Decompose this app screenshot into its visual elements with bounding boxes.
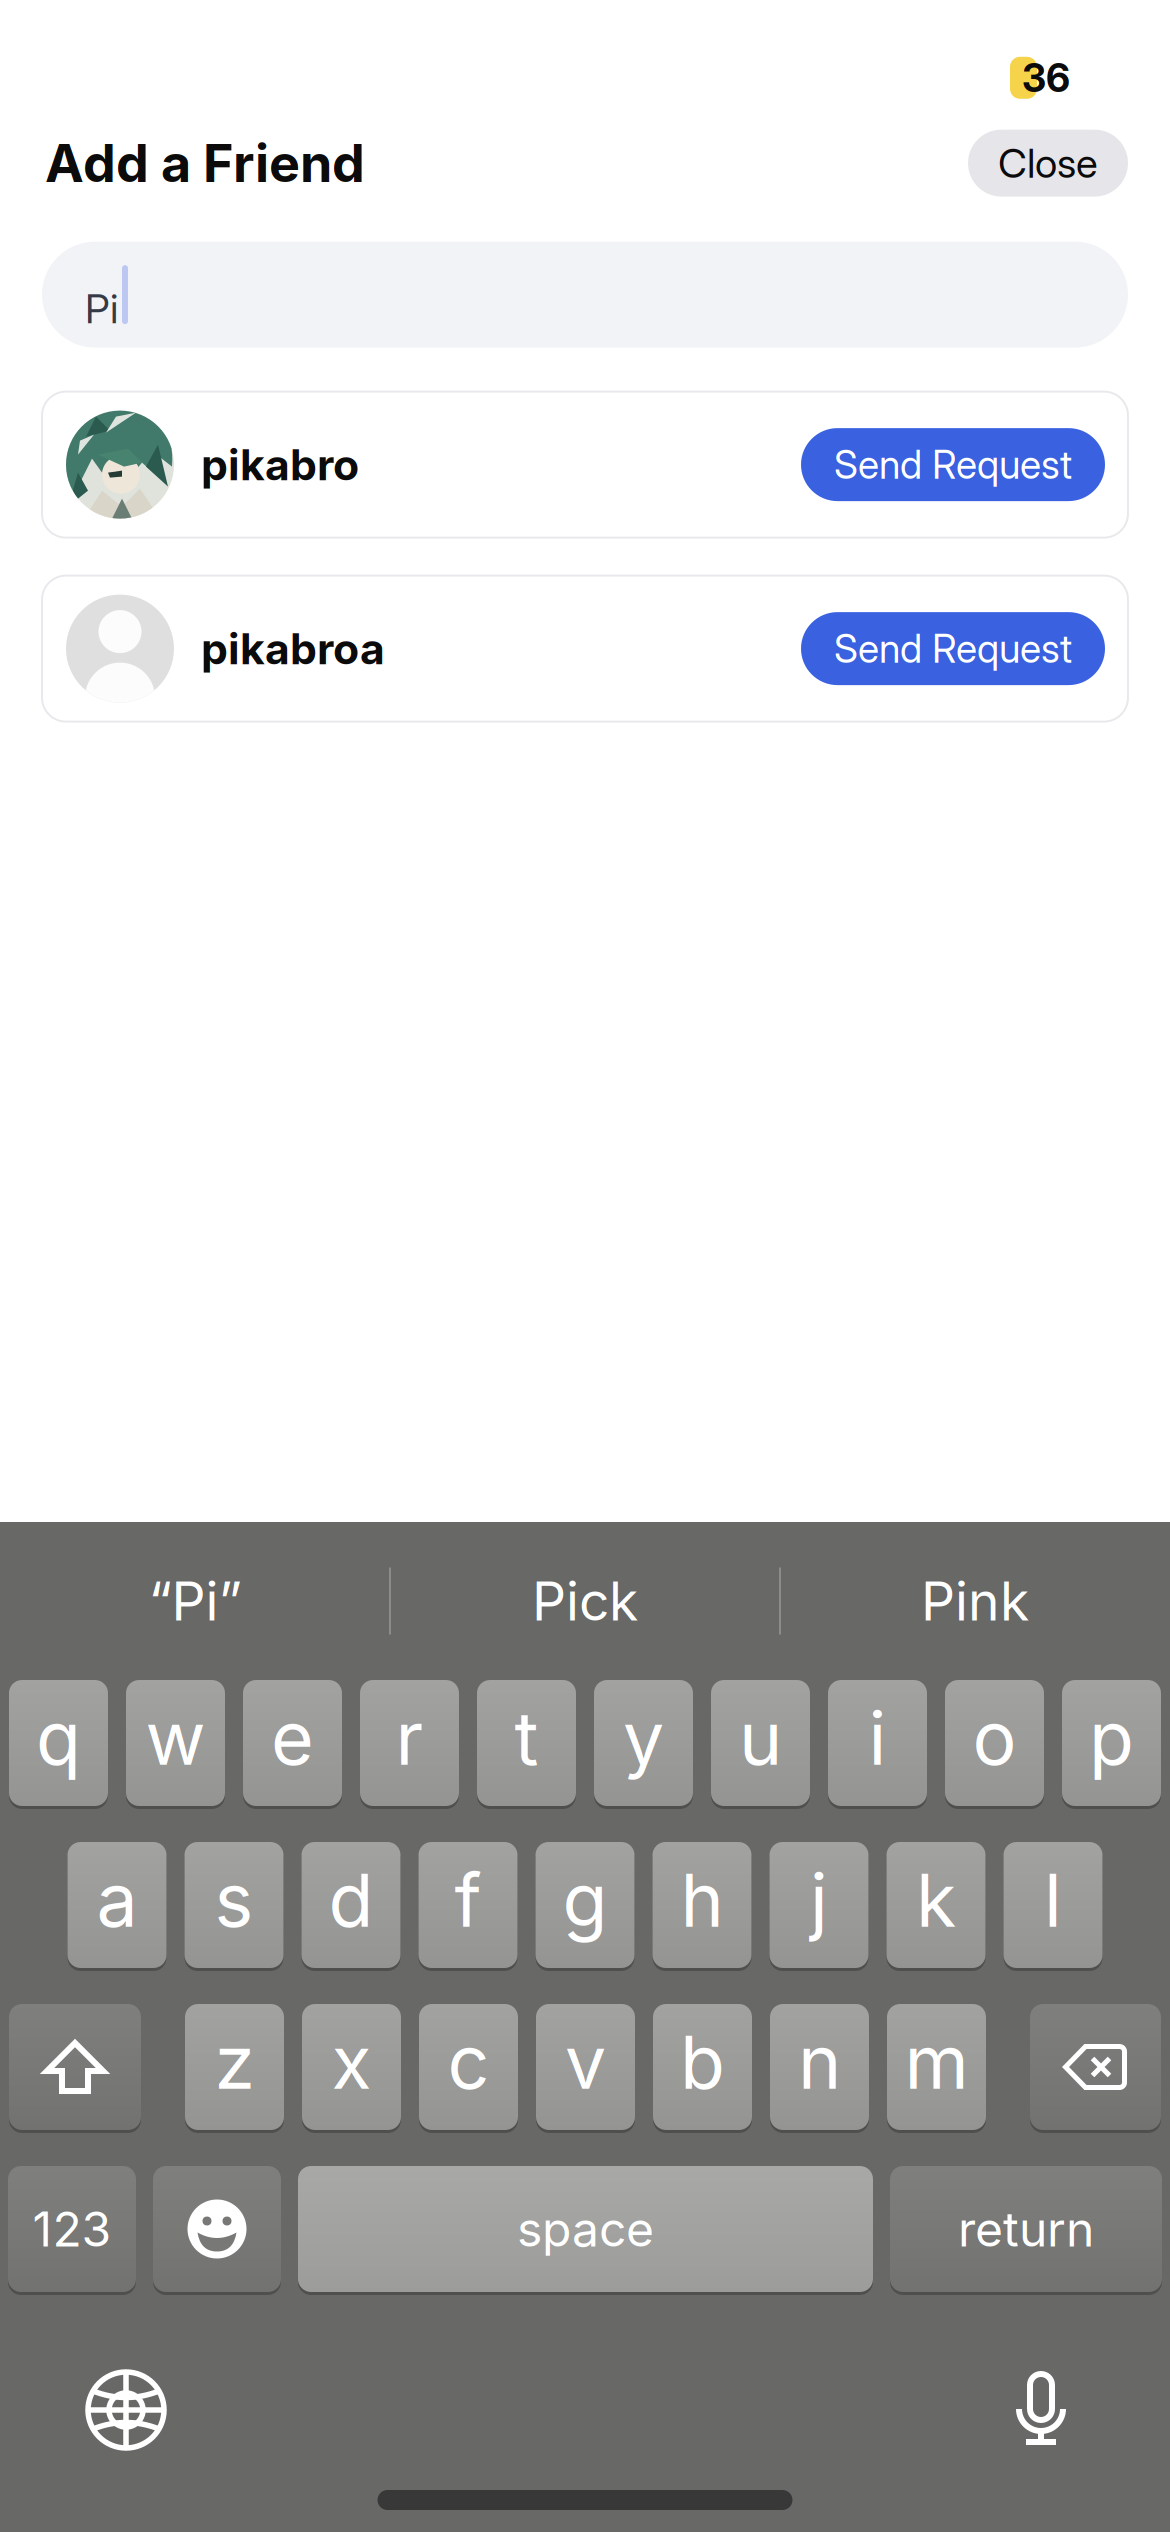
staticText: “Pi” bbox=[148, 1569, 241, 1632]
staticText: g bbox=[562, 1857, 607, 1943]
staticText: o bbox=[972, 1695, 1016, 1781]
button[interactable]: z bbox=[185, 2004, 284, 2130]
staticText: space bbox=[517, 2201, 654, 2257]
button[interactable]: o bbox=[945, 1680, 1044, 1806]
staticText: z bbox=[214, 2019, 254, 2105]
staticText: j bbox=[810, 1857, 828, 1943]
staticText: p bbox=[1089, 1695, 1134, 1781]
staticText: pikabroa bbox=[201, 623, 385, 674]
staticText: d bbox=[328, 1857, 373, 1943]
staticText: Send Request bbox=[834, 442, 1072, 487]
staticText: n bbox=[798, 2019, 841, 2105]
staticText: Close bbox=[998, 139, 1098, 187]
staticText: r bbox=[395, 1695, 423, 1781]
button[interactable]: Numbers bbox=[8, 2166, 136, 2292]
staticText: l bbox=[1044, 1857, 1062, 1943]
staticText: f bbox=[454, 1857, 481, 1943]
staticText: b bbox=[680, 2019, 725, 2105]
staticText: Add a Friend bbox=[45, 132, 365, 194]
button[interactable]: space bbox=[298, 2166, 873, 2292]
button[interactable]: Next keyboard bbox=[84, 2368, 168, 2452]
button[interactable]: a bbox=[67, 1842, 166, 1968]
button[interactable]: Delete bbox=[1030, 2004, 1161, 2130]
staticText: u bbox=[739, 1695, 782, 1781]
button[interactable]: Shift bbox=[9, 2004, 141, 2130]
button[interactable]: “Pi” bbox=[0, 1522, 390, 1680]
button[interactable]: e bbox=[243, 1680, 342, 1806]
staticText: Pi bbox=[85, 285, 118, 332]
button[interactable]: i bbox=[828, 1680, 927, 1806]
staticText: m bbox=[904, 2019, 968, 2105]
button[interactable]: j bbox=[769, 1842, 868, 1968]
staticText: q bbox=[36, 1695, 81, 1781]
staticText: Pick bbox=[532, 1569, 638, 1632]
staticText: c bbox=[447, 2019, 489, 2105]
button[interactable]: b bbox=[653, 2004, 752, 2130]
button[interactable]: f bbox=[418, 1842, 517, 1968]
staticText: Pink bbox=[921, 1569, 1029, 1632]
button[interactable]: t bbox=[477, 1680, 576, 1806]
button[interactable]: u bbox=[711, 1680, 810, 1806]
button[interactable]: Close bbox=[968, 130, 1128, 197]
button[interactable]: Send Request bbox=[801, 612, 1105, 685]
button[interactable]: d bbox=[301, 1842, 400, 1968]
staticText: a bbox=[96, 1857, 137, 1943]
staticText: i bbox=[868, 1695, 886, 1781]
button[interactable]: x bbox=[302, 2004, 401, 2130]
staticText: s bbox=[214, 1857, 253, 1943]
button[interactable]: Dictate bbox=[1011, 2371, 1071, 2449]
button[interactable]: Pick bbox=[390, 1522, 780, 1680]
staticText: h bbox=[680, 1857, 723, 1943]
staticText: 36 bbox=[1022, 55, 1070, 101]
staticText: t bbox=[514, 1695, 538, 1781]
button[interactable]: v bbox=[536, 2004, 635, 2130]
button[interactable]: l bbox=[1003, 1842, 1102, 1968]
staticText: e bbox=[271, 1695, 314, 1781]
button[interactable]: c bbox=[419, 2004, 518, 2130]
button[interactable]: r bbox=[360, 1680, 459, 1806]
button[interactable]: g bbox=[535, 1842, 634, 1968]
button[interactable]: y bbox=[594, 1680, 693, 1806]
button[interactable]: w bbox=[126, 1680, 225, 1806]
button[interactable]: s bbox=[184, 1842, 283, 1968]
staticText: return bbox=[958, 2201, 1094, 2257]
staticText: 123 bbox=[32, 2201, 111, 2257]
button[interactable]: n bbox=[770, 2004, 869, 2130]
button[interactable]: m bbox=[887, 2004, 986, 2130]
button[interactable]: Send Request bbox=[801, 428, 1105, 501]
staticText: x bbox=[331, 2019, 371, 2105]
staticText: Send Request bbox=[834, 626, 1072, 671]
staticText: pikabro bbox=[201, 439, 359, 490]
button[interactable]: p bbox=[1062, 1680, 1161, 1806]
button[interactable]: Emoji bbox=[153, 2166, 281, 2292]
button[interactable]: h bbox=[652, 1842, 751, 1968]
staticText: v bbox=[565, 2019, 606, 2105]
staticText: w bbox=[145, 1695, 205, 1781]
staticText: k bbox=[916, 1857, 956, 1943]
button[interactable]: k bbox=[886, 1842, 985, 1968]
staticText: y bbox=[623, 1695, 664, 1781]
button[interactable]: Pink bbox=[780, 1522, 1170, 1680]
button[interactable]: return bbox=[890, 2166, 1162, 2292]
button[interactable]: q bbox=[9, 1680, 108, 1806]
